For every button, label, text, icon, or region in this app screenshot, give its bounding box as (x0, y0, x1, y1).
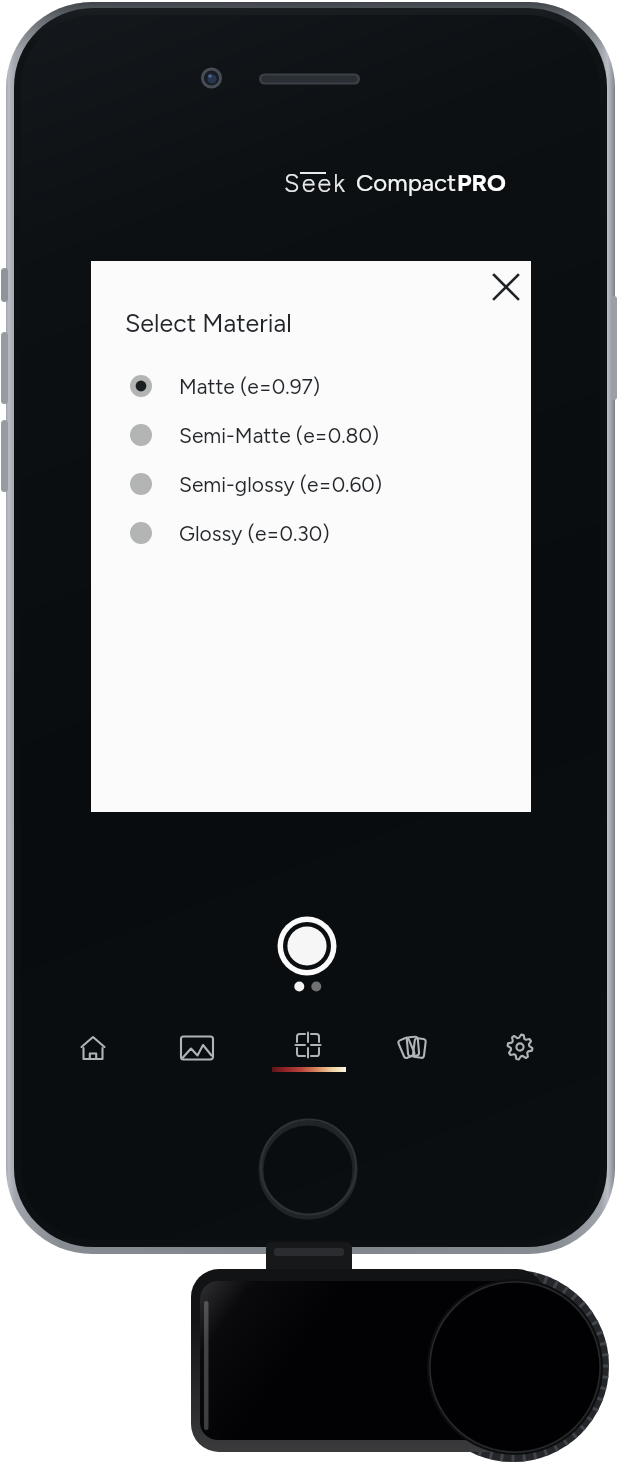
staticText: Matte (e=0.97) (179, 374, 321, 399)
staticText: Select Material (125, 308, 292, 338)
button[interactable]: Semi-glossy (e=0.60) (91, 462, 531, 506)
staticText: Seek (284, 168, 348, 198)
staticText: Glossy (e=0.30) (179, 521, 330, 546)
button[interactable]: Glossy (e=0.30) (91, 511, 531, 555)
button[interactable]: Home (67, 1022, 119, 1074)
staticText: Semi-Matte (e=0.80) (179, 423, 380, 448)
staticText: Compact (356, 168, 457, 197)
button[interactable]: Settings (494, 1021, 546, 1073)
button[interactable]: Semi-Matte (e=0.80) (91, 413, 531, 457)
staticText: Semi-glossy (e=0.60) (179, 472, 383, 497)
button[interactable]: Gallery (171, 1022, 223, 1074)
button[interactable]: Thermal tools (282, 1019, 334, 1071)
button[interactable]: Palettes (387, 1020, 439, 1072)
staticText: PRO (457, 168, 506, 197)
button[interactable]: Capture (277, 916, 337, 976)
button[interactable]: Close (484, 265, 528, 309)
button[interactable]: Matte (e=0.97) (91, 364, 531, 408)
